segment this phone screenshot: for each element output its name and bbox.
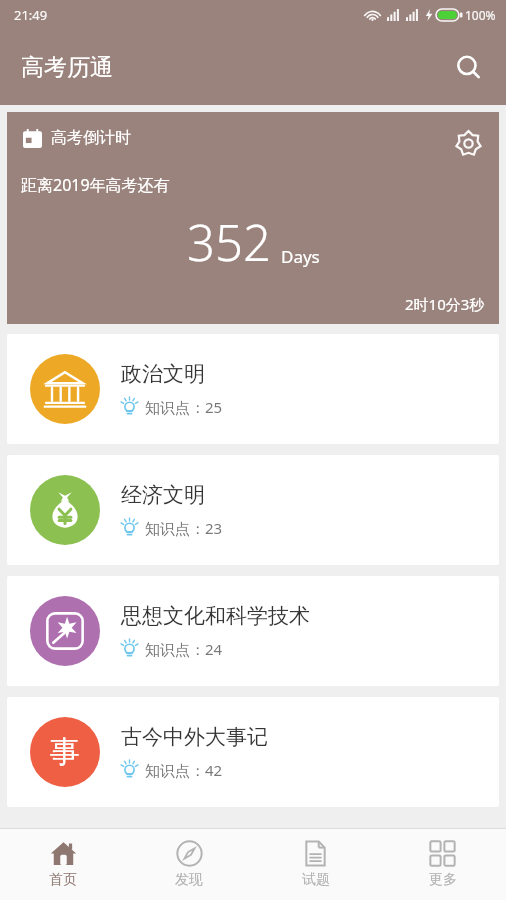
staticText: 试题 — [302, 871, 330, 889]
staticText: 知识点：24 — [145, 639, 223, 659]
button[interactable]: 经济文明 — [7, 455, 499, 565]
staticText: 政治文明 — [121, 361, 205, 387]
button[interactable]: Search — [446, 45, 492, 91]
staticText: 100% — [465, 7, 496, 23]
staticText: Days — [281, 245, 320, 268]
button[interactable]: 首页 — [0, 829, 126, 900]
staticText: 高考倒计时 — [51, 128, 131, 148]
staticText: 思想文化和科学技术 — [121, 603, 310, 629]
staticText: 发现 — [175, 871, 203, 889]
staticText: 352 — [187, 209, 271, 276]
staticText: 更多 — [429, 871, 457, 889]
button[interactable]: 发现 — [126, 829, 252, 900]
button[interactable]: 高考倒计时 — [7, 112, 499, 324]
staticText: 知识点：25 — [145, 397, 223, 417]
staticText: 首页 — [49, 871, 77, 889]
button[interactable]: 试题 — [252, 829, 379, 900]
staticText: 距离2019年高考还有 — [21, 174, 170, 196]
staticText: 知识点：42 — [145, 760, 223, 780]
staticText: 经济文明 — [121, 482, 205, 508]
button[interactable]: 更多 — [379, 829, 506, 900]
button[interactable]: 政治文明 — [7, 334, 499, 444]
button[interactable]: 事 — [7, 697, 499, 807]
staticText: 知识点：23 — [145, 518, 223, 538]
staticText: 高考历通 — [21, 53, 113, 82]
staticText: 事 — [50, 733, 80, 771]
button[interactable]: Settings — [447, 122, 489, 164]
staticText: 21:49 — [14, 6, 48, 24]
staticText: 古今中外大事记 — [121, 724, 268, 750]
button[interactable]: 思想文化和科学技术 — [7, 576, 499, 686]
staticText: 2时10分3秒 — [405, 294, 485, 314]
